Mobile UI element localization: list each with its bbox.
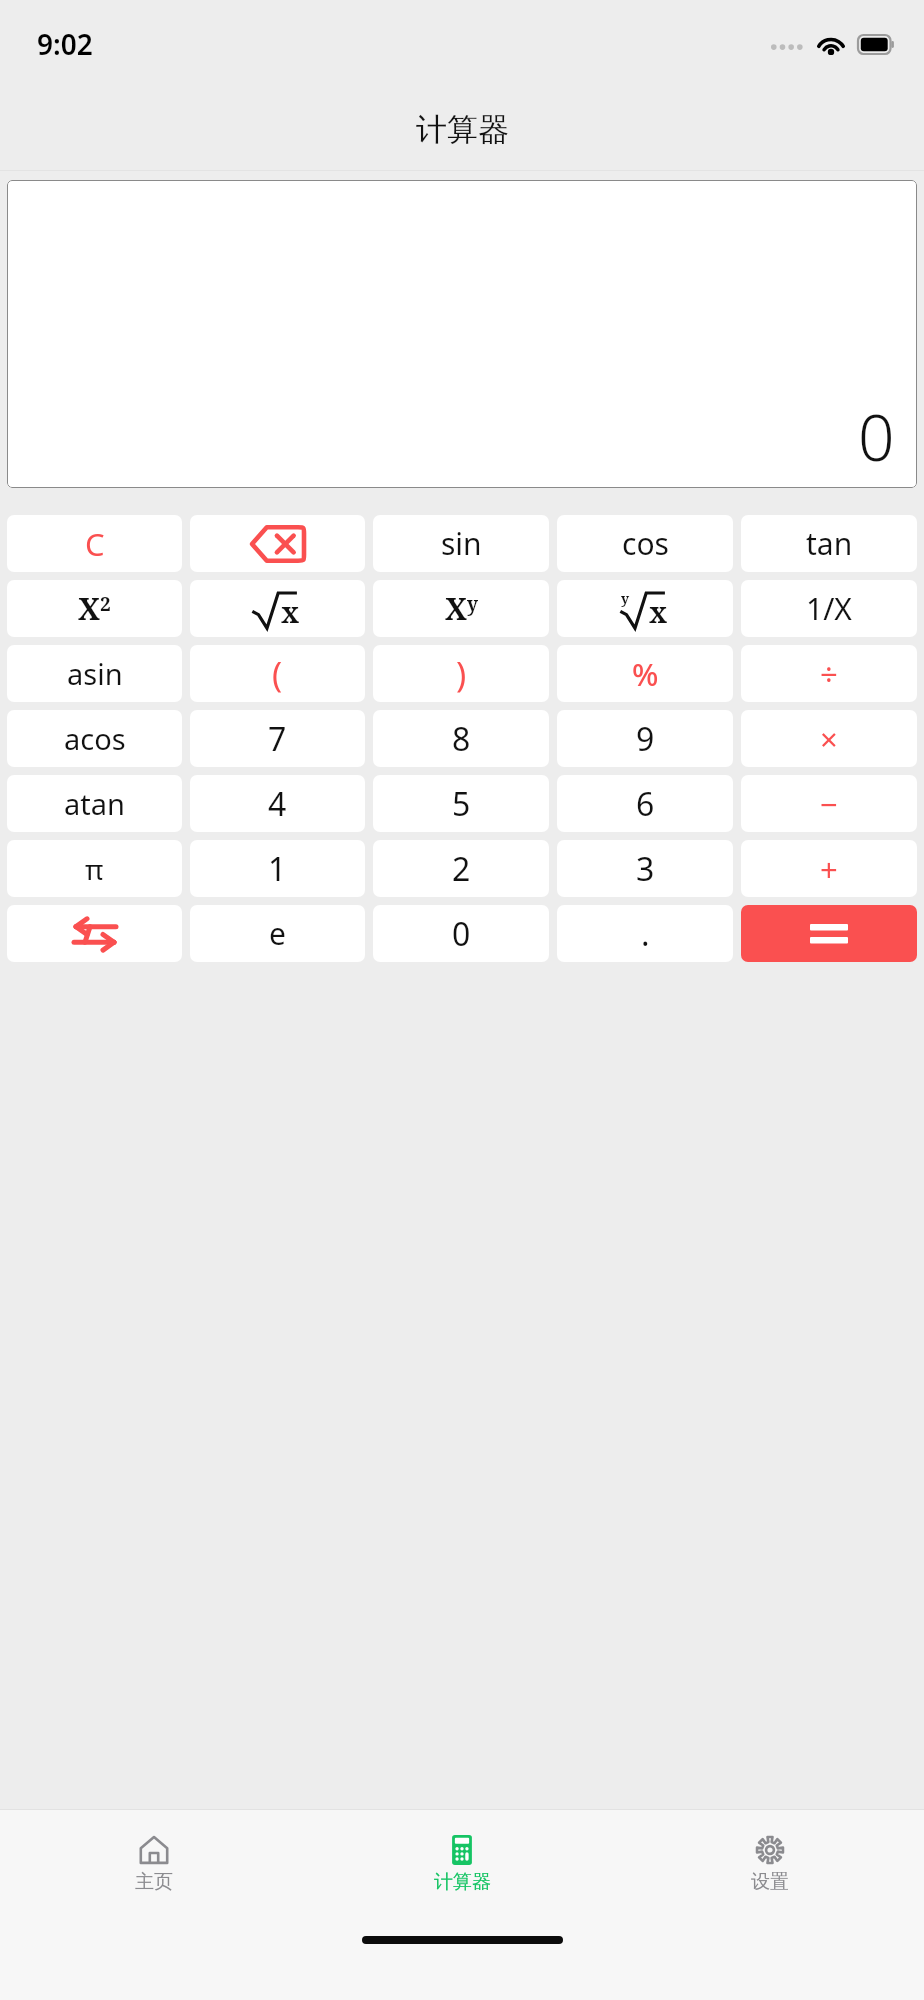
button[interactable]: sin bbox=[373, 515, 549, 572]
staticText: × bbox=[820, 718, 838, 760]
staticText: % bbox=[632, 653, 659, 695]
staticText: 计算器 bbox=[416, 110, 509, 149]
button[interactable]: X2 bbox=[7, 580, 182, 637]
button[interactable]: 8 bbox=[373, 710, 549, 767]
button[interactable]: 6 bbox=[557, 775, 733, 832]
button[interactable]: 1/X bbox=[741, 580, 917, 637]
staticText: + bbox=[820, 848, 838, 890]
staticText: 9:02 bbox=[37, 25, 93, 63]
staticText: x bbox=[649, 593, 668, 631]
staticText: 0 bbox=[858, 393, 895, 480]
staticText: atan bbox=[64, 784, 125, 823]
button[interactable]: % bbox=[557, 645, 733, 702]
button[interactable]: C bbox=[7, 515, 182, 572]
staticText: C bbox=[85, 523, 105, 565]
staticText: 1/X bbox=[806, 588, 852, 629]
staticText: X2 bbox=[78, 588, 111, 629]
staticText: 4 bbox=[268, 782, 287, 826]
button[interactable]: 3 bbox=[557, 840, 733, 897]
button[interactable]: × bbox=[741, 710, 917, 767]
staticText: 9 bbox=[636, 717, 655, 761]
staticText: 计算器 bbox=[434, 1870, 491, 1894]
staticText: 8 bbox=[452, 717, 471, 761]
button[interactable]: 5 bbox=[373, 775, 549, 832]
button[interactable]: 2 bbox=[373, 840, 549, 897]
staticText: 0 bbox=[452, 912, 471, 956]
button[interactable]: tan bbox=[741, 515, 917, 572]
button[interactable]: ÷ bbox=[741, 645, 917, 702]
button[interactable]: atan bbox=[7, 775, 182, 832]
button[interactable]: π bbox=[7, 840, 182, 897]
staticText: . bbox=[641, 912, 650, 956]
staticText: 5 bbox=[452, 782, 471, 826]
staticText: π bbox=[85, 850, 104, 888]
staticText: ( bbox=[272, 651, 283, 697]
staticText: 3 bbox=[636, 847, 655, 891]
button[interactable]: Square root bbox=[190, 580, 365, 637]
staticText: tan bbox=[806, 523, 853, 564]
button[interactable]: 主页 bbox=[0, 1810, 308, 1918]
button[interactable]: Nth root bbox=[557, 580, 733, 637]
button[interactable]: ( bbox=[190, 645, 365, 702]
button[interactable]: + bbox=[741, 840, 917, 897]
button[interactable]: cos bbox=[557, 515, 733, 572]
button[interactable]: asin bbox=[7, 645, 182, 702]
button[interactable]: Xy bbox=[373, 580, 549, 637]
staticText: 设置 bbox=[751, 1870, 789, 1894]
staticText: sin bbox=[441, 523, 482, 564]
staticText: 6 bbox=[636, 782, 655, 826]
staticText: 7 bbox=[268, 717, 287, 761]
button[interactable]: acos bbox=[7, 710, 182, 767]
button[interactable]: . bbox=[557, 905, 733, 962]
staticText: 2 bbox=[452, 847, 471, 891]
button[interactable]: 4 bbox=[190, 775, 365, 832]
button[interactable]: ) bbox=[373, 645, 549, 702]
staticText: ) bbox=[456, 651, 467, 697]
button[interactable]: e bbox=[190, 905, 365, 962]
button[interactable]: Swap bbox=[7, 905, 182, 962]
staticText: y bbox=[621, 589, 630, 608]
button[interactable]: 计算器 bbox=[308, 1810, 616, 1918]
staticText: 1 bbox=[268, 847, 287, 891]
staticText: acos bbox=[64, 719, 126, 758]
button[interactable]: Equals bbox=[741, 905, 917, 962]
staticText: asin bbox=[67, 654, 123, 693]
button[interactable]: Backspace bbox=[190, 515, 365, 572]
staticText: e bbox=[269, 913, 286, 954]
staticText: Xy bbox=[445, 588, 478, 629]
button[interactable]: 0 bbox=[373, 905, 549, 962]
button[interactable]: 7 bbox=[190, 710, 365, 767]
button[interactable]: 设置 bbox=[616, 1810, 924, 1918]
staticText: ÷ bbox=[820, 653, 838, 695]
staticText: x bbox=[281, 593, 300, 631]
button[interactable]: 9 bbox=[557, 710, 733, 767]
staticText: 主页 bbox=[135, 1870, 173, 1894]
button[interactable]: 1 bbox=[190, 840, 365, 897]
button[interactable]: − bbox=[741, 775, 917, 832]
staticText: cos bbox=[622, 523, 669, 564]
staticText: − bbox=[820, 783, 838, 825]
